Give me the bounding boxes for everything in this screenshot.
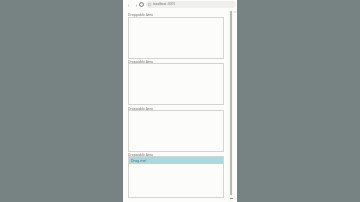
button[interactable]: Forward	[133, 2, 139, 8]
staticText: Droppable Area	[128, 152, 153, 157]
staticText: Droppable Area	[128, 12, 153, 17]
staticText: Droppable Area	[128, 106, 153, 111]
button[interactable]: Back	[125, 2, 131, 8]
staticText: localhost	[153, 2, 167, 6]
button[interactable]: Address bar	[146, 1, 236, 8]
button[interactable]: Drag me!	[128, 157, 224, 164]
staticText: Drag me!	[131, 158, 147, 163]
staticText: Droppable Area	[128, 59, 153, 64]
staticText: :3000	[167, 2, 175, 6]
button[interactable]: Reload	[138, 1, 145, 8]
